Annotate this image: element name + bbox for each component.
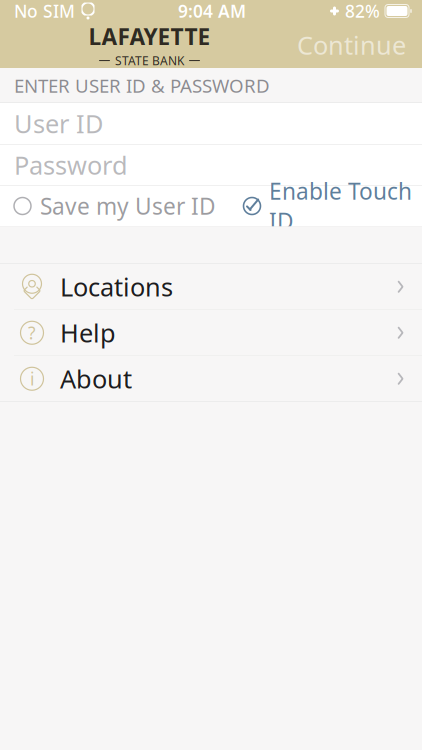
button[interactable]: ? xyxy=(0,310,422,355)
button[interactable]: Locations xyxy=(0,264,422,309)
staticText: i xyxy=(30,367,34,390)
staticText: Enable Touch ID xyxy=(269,176,412,236)
staticText: Locations xyxy=(60,270,173,303)
button[interactable]: Enable Touch ID xyxy=(242,168,412,244)
staticText: 9:04 AM xyxy=(178,0,246,22)
staticText: 82% xyxy=(345,0,380,22)
staticText: Help xyxy=(60,316,116,349)
staticText: About xyxy=(60,362,132,395)
button[interactable]: i xyxy=(0,356,422,401)
staticText: Continue xyxy=(297,28,406,62)
staticText: No SIM xyxy=(14,0,75,22)
staticText: LAFAYETTE xyxy=(88,21,210,52)
button[interactable]: Continue xyxy=(285,22,418,68)
staticText: ? xyxy=(28,321,36,344)
staticText: ENTER USER ID & PASSWORD xyxy=(14,73,270,98)
staticText: User ID xyxy=(14,107,103,140)
button[interactable]: Save my User ID xyxy=(14,183,216,229)
staticText: Save my User ID xyxy=(40,191,216,221)
staticText: STATE BANK xyxy=(115,53,184,68)
staticText: Password xyxy=(14,148,128,182)
